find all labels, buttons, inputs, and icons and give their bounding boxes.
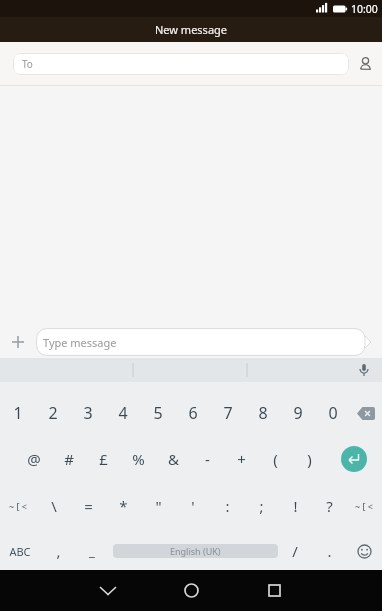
button[interactable]: &: [156, 436, 190, 482]
button[interactable]: 4: [105, 390, 140, 436]
button[interactable]: 0: [315, 390, 350, 436]
button[interactable]: 3: [70, 390, 105, 436]
button[interactable]: _: [76, 530, 108, 572]
button[interactable]: 7: [210, 390, 245, 436]
button[interactable]: 1: [0, 390, 35, 436]
staticText: /: [292, 541, 298, 561]
button[interactable]: \: [36, 483, 71, 529]
staticText: 3: [83, 402, 93, 424]
button[interactable]: [350, 390, 382, 436]
button[interactable]: English (UK): [113, 544, 278, 558]
button[interactable]: [326, 436, 382, 482]
staticText: 2: [48, 402, 58, 424]
staticText: Type message: [43, 335, 117, 350]
button[interactable]: Type message: [36, 328, 372, 356]
staticText: 4: [118, 402, 128, 424]
staticText: 7: [223, 402, 233, 424]
button[interactable]: [349, 42, 382, 85]
staticText: 9: [293, 402, 303, 424]
staticText: ~ [ <: [355, 500, 373, 512]
staticText: ?: [326, 496, 333, 516]
button[interactable]: [0, 325, 36, 358]
button[interactable]: .: [312, 530, 346, 572]
staticText: 1: [13, 402, 23, 424]
staticText: ABC: [9, 544, 31, 559]
button[interactable]: @: [16, 436, 51, 482]
button[interactable]: =: [71, 483, 106, 529]
button[interactable]: ~ [ <: [346, 483, 382, 529]
button[interactable]: 2: [35, 390, 70, 436]
button[interactable]: [66, 570, 150, 611]
staticText: !: [293, 496, 298, 516]
button[interactable]: (: [258, 436, 292, 482]
staticText: \: [51, 496, 57, 516]
button[interactable]: [233, 570, 316, 611]
button[interactable]: #: [51, 436, 86, 482]
staticText: £: [99, 449, 108, 469]
staticText: &: [168, 449, 179, 469]
button[interactable]: ": [141, 483, 176, 529]
staticText: -: [205, 449, 210, 469]
staticText: ,: [56, 541, 61, 561]
button[interactable]: 8: [245, 390, 280, 436]
button[interactable]: To: [13, 53, 349, 75]
button[interactable]: £: [86, 436, 121, 482]
button[interactable]: 9: [280, 390, 315, 436]
staticText: %: [132, 449, 145, 469]
staticText: New message: [155, 22, 228, 37]
staticText: 5: [153, 402, 163, 424]
staticText: 8: [258, 402, 268, 424]
button[interactable]: !: [278, 483, 312, 529]
button[interactable]: [346, 530, 382, 572]
staticText: English (UK): [170, 545, 221, 557]
staticText: @: [27, 449, 41, 469]
staticText: ~ [ <: [9, 500, 27, 512]
button[interactable]: 6: [175, 390, 210, 436]
staticText: (: [273, 449, 278, 469]
button[interactable]: /: [278, 530, 312, 572]
button[interactable]: ?: [312, 483, 346, 529]
staticText: To: [22, 57, 33, 71]
button[interactable]: [346, 358, 382, 382]
staticText: ": [155, 496, 162, 516]
button[interactable]: ,: [40, 530, 76, 572]
button[interactable]: ): [292, 436, 326, 482]
button[interactable]: +: [224, 436, 258, 482]
staticText: *: [119, 496, 128, 516]
button[interactable]: -: [190, 436, 224, 482]
button[interactable]: ;: [244, 483, 278, 529]
staticText: 6: [188, 402, 198, 424]
button[interactable]: %: [121, 436, 156, 482]
staticText: 10:00: [351, 2, 378, 16]
staticText: ): [307, 449, 312, 469]
button[interactable]: [150, 570, 233, 611]
staticText: ;: [259, 496, 264, 516]
staticText: 0: [328, 402, 338, 424]
button[interactable]: 5: [140, 390, 175, 436]
button[interactable]: ': [176, 483, 210, 529]
staticText: .: [327, 541, 332, 561]
button[interactable]: *: [106, 483, 141, 529]
staticText: _: [89, 542, 95, 560]
staticText: ': [191, 496, 195, 516]
button[interactable]: ABC: [0, 530, 40, 572]
staticText: :: [225, 496, 230, 516]
staticText: #: [64, 449, 74, 469]
button[interactable]: ~ [ <: [0, 483, 36, 529]
staticText: +: [237, 449, 246, 469]
button[interactable]: :: [210, 483, 244, 529]
staticText: =: [84, 496, 93, 516]
